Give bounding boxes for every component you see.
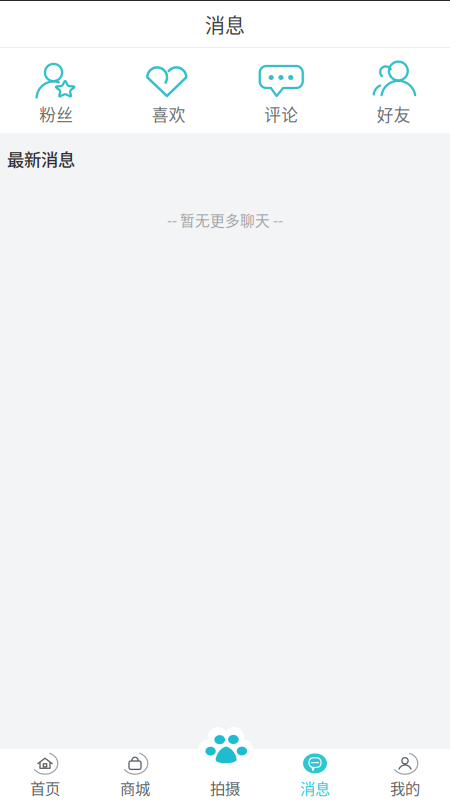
button[interactable]: 拍摄 [199,728,251,769]
staticText: 喜欢 [152,102,186,126]
button[interactable]: 商城 [90,747,180,800]
staticText: 最新消息 [7,146,75,171]
staticText: 首页 [30,776,60,799]
staticText: 我的 [390,776,420,799]
staticText: 好友 [377,102,411,126]
staticText: 粉丝 [39,102,73,126]
button[interactable]: 评论 [225,48,337,133]
staticText: 商城 [120,776,150,799]
button[interactable]: 消息 [270,747,360,800]
button[interactable]: 好友 [337,48,450,133]
staticText: 消息 [205,10,245,39]
button[interactable]: 我的 [360,747,450,800]
button[interactable]: 粉丝 [0,48,112,133]
staticText: -- 暂无更多聊天 -- [167,209,283,230]
staticText: 评论 [264,102,298,126]
staticText: 拍摄 [210,776,240,799]
button[interactable]: 拍摄 [180,747,270,800]
staticText: 消息 [300,776,330,799]
button[interactable]: 喜欢 [112,48,225,133]
button[interactable]: 首页 [0,747,90,800]
